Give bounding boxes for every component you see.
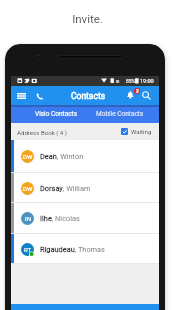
staticText: 85% [126,78,136,84]
button[interactable]: Menu [14,86,29,105]
staticText: RT [24,246,32,253]
staticText: Ilhe, Nicolas [40,214,80,223]
staticText: DW [23,185,33,192]
staticText: Invite. [72,12,103,25]
staticText: DW [23,153,33,160]
button[interactable]: Mobile Contacts [88,105,151,123]
staticText: 19:00 [140,78,154,84]
staticText: Rigaudeau, Thomas [40,245,105,254]
button[interactable]: DW [11,173,159,203]
button[interactable]: Visio Contacts [25,105,88,123]
button[interactable]: Search [139,86,153,105]
button[interactable]: Call [32,86,47,105]
staticText: Visio Contacts [35,110,78,118]
button[interactable]: RT [11,234,159,264]
button[interactable]: Waiting [121,123,152,140]
button[interactable]: IN [11,203,159,234]
staticText: Address Book ( 4 ) [17,129,67,136]
button[interactable]: Notifications [123,86,137,105]
staticText: 3 [136,89,139,94]
staticText: Dean, Winton [40,152,84,161]
staticText: Mobile Contacts [96,110,144,118]
staticText: Dorsay, William [40,184,91,193]
button[interactable]: DW [11,140,159,173]
staticText: Contacts [71,91,106,101]
staticText: IN [25,215,31,222]
staticText: Waiting [131,128,152,135]
